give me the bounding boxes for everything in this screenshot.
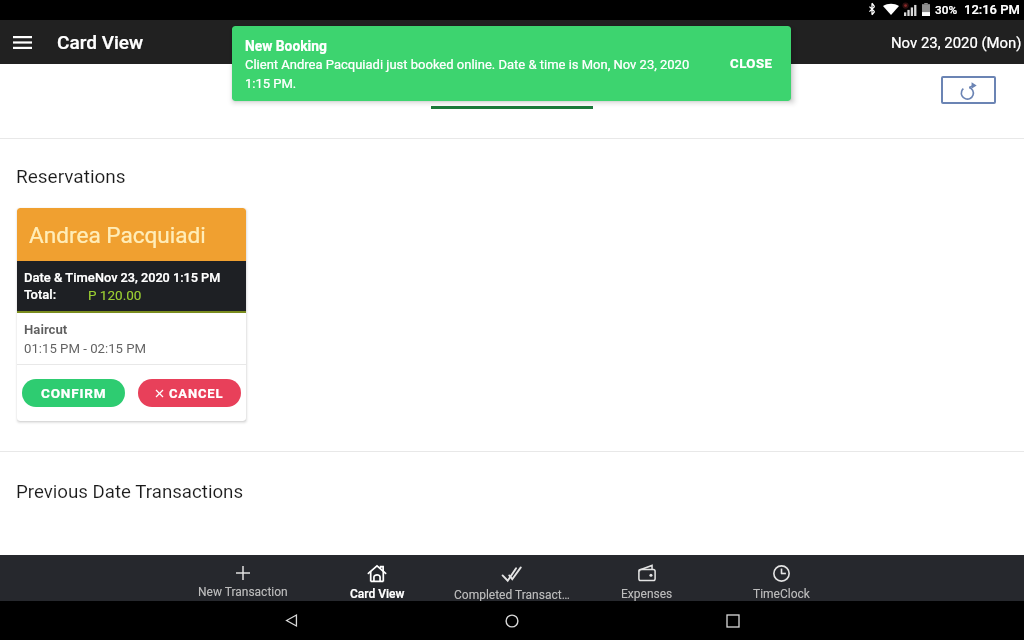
- staticText: Reservations: [16, 165, 126, 187]
- staticText: Previous Date Transactions: [16, 481, 244, 503]
- staticText: 12:16 PM: [964, 2, 1020, 17]
- staticText: P 120.00: [88, 287, 142, 303]
- staticText: 01:15 PM - 02:15 PM: [24, 341, 147, 356]
- staticText: Client Andrea Pacquiadi just booked onli…: [245, 57, 695, 91]
- button[interactable]: Home: [492, 601, 532, 640]
- button[interactable]: TimeClock: [714, 555, 849, 601]
- staticText: TimeClock: [753, 587, 810, 601]
- staticText: Nov 23, 2020 1:15 PM: [95, 270, 221, 285]
- staticText: New Booking: [245, 38, 327, 54]
- button[interactable]: Expenses: [579, 555, 714, 601]
- button[interactable]: Refresh: [941, 76, 996, 104]
- button[interactable]: New Transaction: [176, 555, 310, 601]
- button[interactable]: CONFIRM: [22, 379, 125, 407]
- button[interactable]: CANCEL: [138, 379, 241, 407]
- button[interactable]: Andrea Pacquiadi: [17, 208, 246, 421]
- button[interactable]: Menu: [0, 20, 44, 64]
- button[interactable]: Card View: [310, 555, 444, 601]
- staticText: Card View: [57, 31, 144, 53]
- button[interactable]: Back: [271, 601, 311, 640]
- staticText: Completed Transact…: [454, 588, 570, 601]
- staticText: Haircut: [24, 322, 68, 337]
- staticText: Expenses: [621, 587, 673, 601]
- staticText: Card View: [350, 587, 405, 601]
- staticText: Nov 23, 2020 (Mon): [891, 34, 1022, 51]
- staticText: CONFIRM: [41, 385, 107, 401]
- staticText: Total:: [24, 287, 88, 302]
- staticText: CLOSE: [730, 56, 773, 71]
- staticText: Andrea Pacquiadi: [29, 222, 206, 248]
- staticText: New Transaction: [198, 585, 288, 599]
- staticText: 30%: [935, 3, 958, 17]
- staticText: Date & Time: [24, 270, 95, 285]
- staticText: CANCEL: [169, 386, 224, 401]
- button[interactable]: CLOSE: [718, 48, 785, 79]
- button[interactable]: Recents: [713, 601, 753, 640]
- button[interactable]: Completed Transact…: [444, 555, 579, 601]
